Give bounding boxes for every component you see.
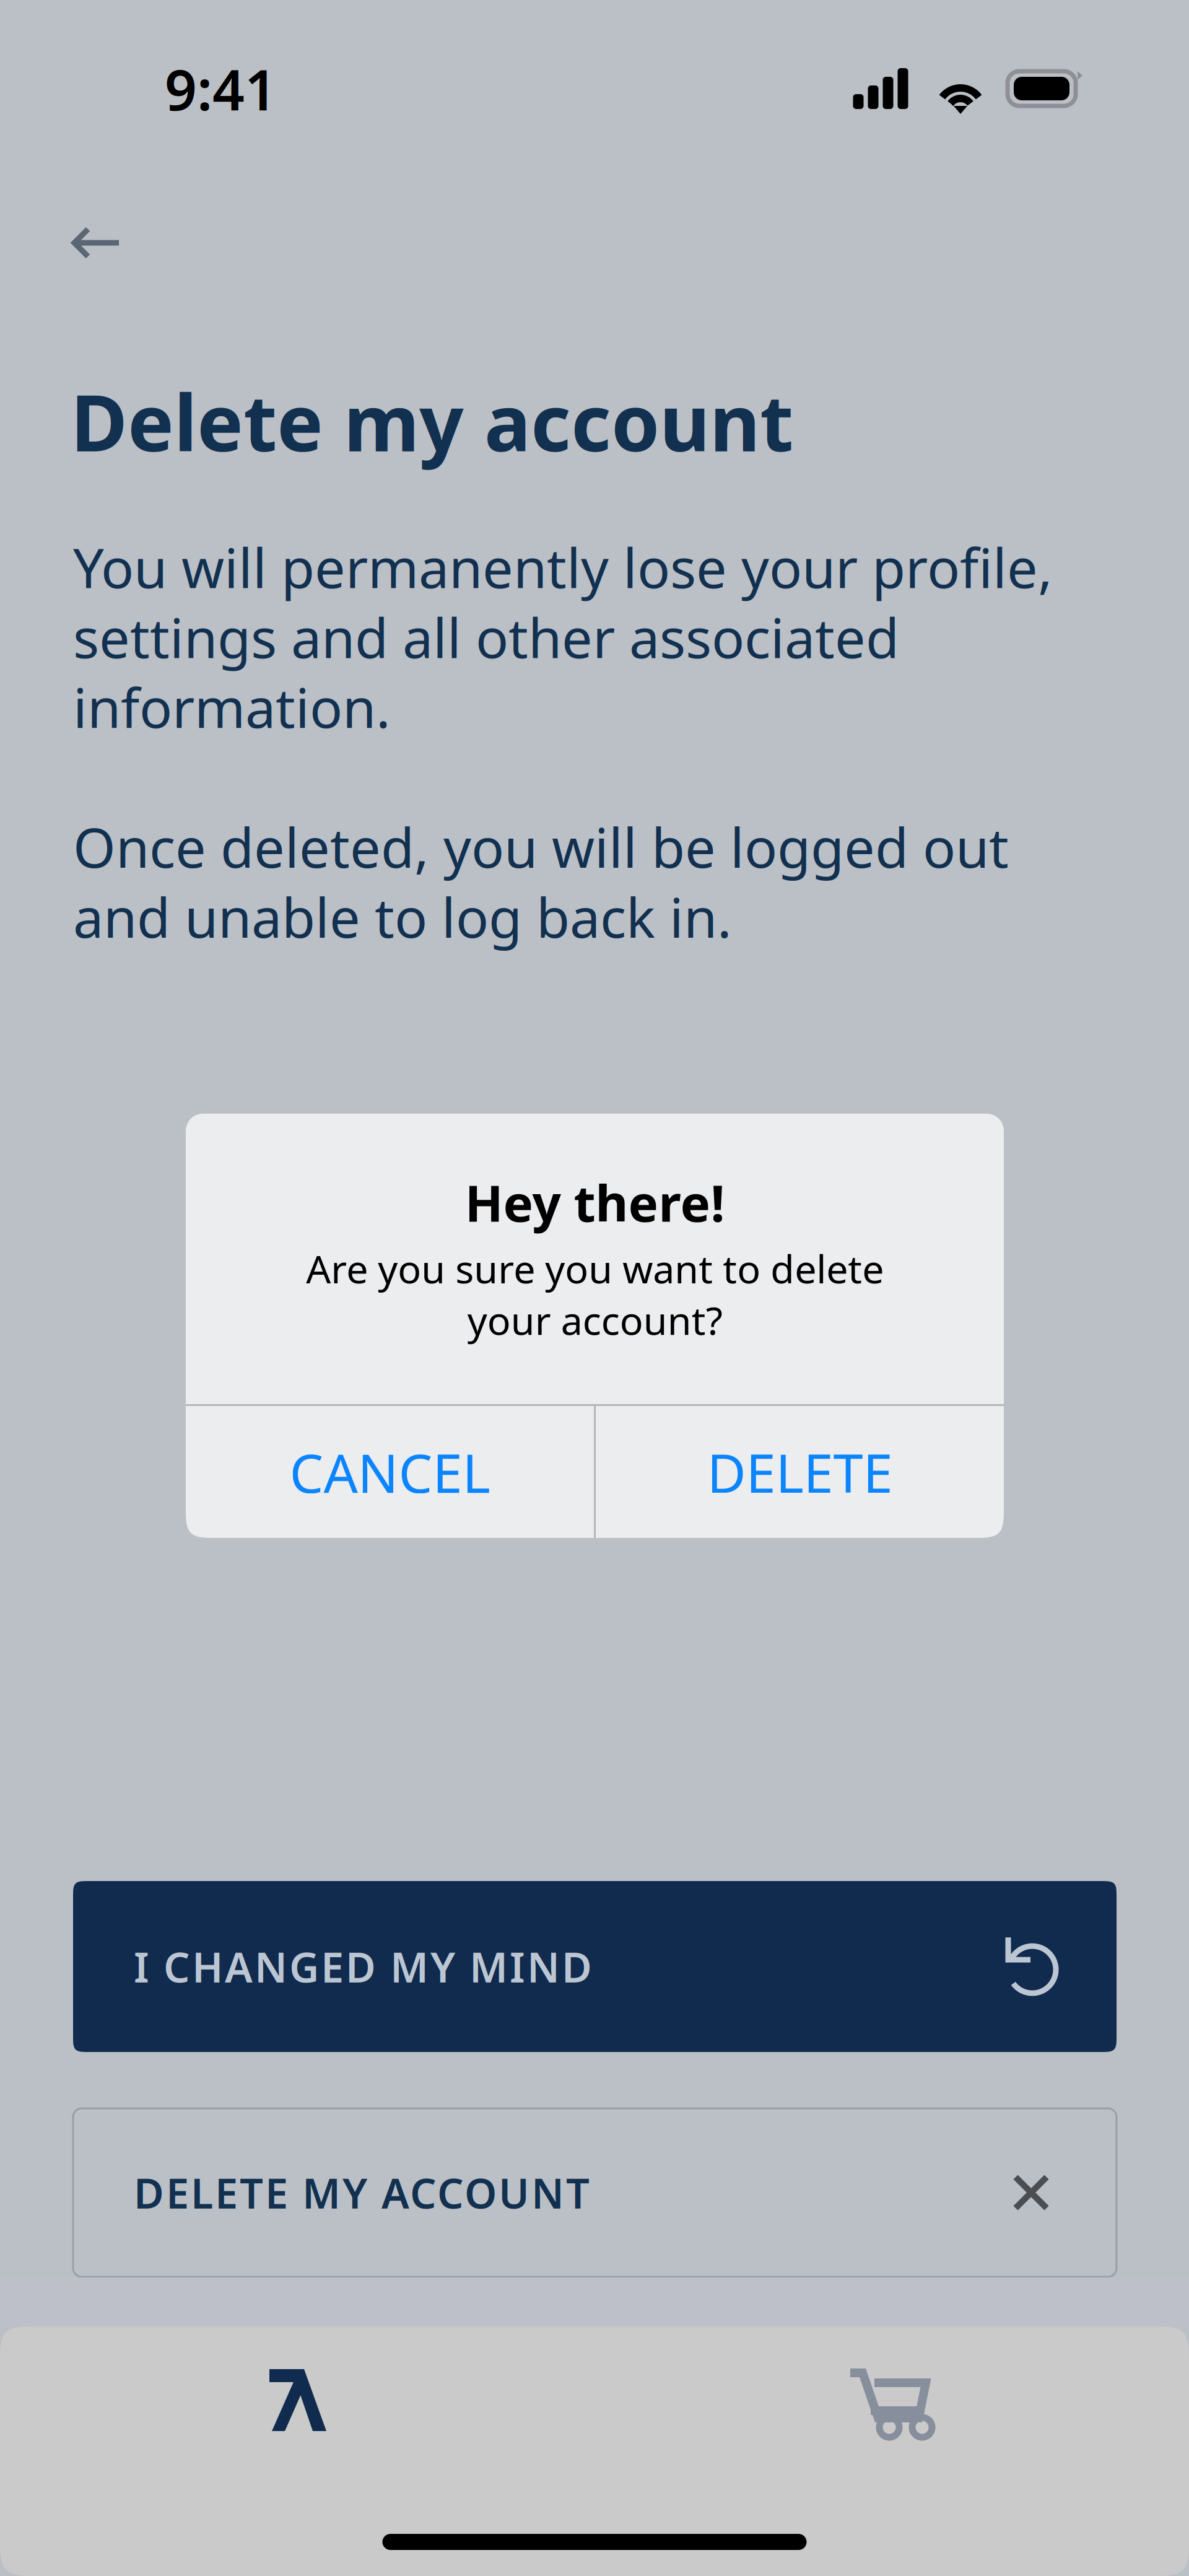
staticText: DELETE MY ACCOUNT [134,2165,590,2220]
staticText: I CHANGED MY MIND [134,1939,592,1994]
button[interactable]: CANCEL [186,1406,594,1538]
staticText: 9:41 [165,51,277,126]
staticText: Hey there! [465,1169,725,1236]
button[interactable]: Back [0,193,213,292]
staticText: You will permanently lose your profile, … [73,531,1053,953]
staticText: CANCEL [290,1436,490,1508]
button[interactable]: Home [0,2326,594,2453]
button[interactable]: I CHANGED MY MIND [73,1881,1117,2052]
button[interactable]: DELETE [596,1406,1004,1538]
staticText: DELETE [707,1436,893,1508]
button[interactable]: Cart [594,2326,1189,2453]
staticText: Delete my account [71,370,793,473]
staticText: Are you sure you want to delete your acc… [306,1242,884,1346]
button[interactable]: DELETE MY ACCOUNT [73,2108,1117,2277]
